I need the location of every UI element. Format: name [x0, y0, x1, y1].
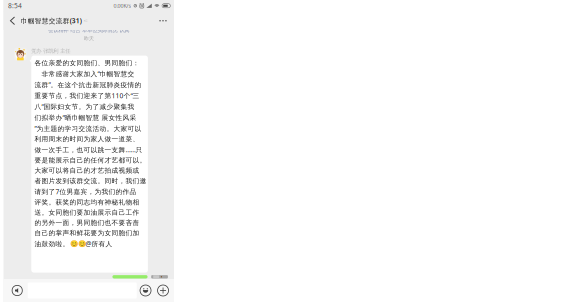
button[interactable]: Back — [3, 11, 21, 30]
staticText: 会议精神 结合 本单位实际情况 认真 — [48, 27, 129, 33]
staticText: 0.00K/s — [113, 2, 131, 9]
staticText: 8:54 — [8, 1, 22, 10]
staticText: 大家可以将自己的才艺拍成视频或 — [34, 166, 139, 175]
button[interactable]: Voice message — [7, 279, 28, 302]
staticText: 党办 张凯利 主任 — [31, 48, 70, 54]
staticText: 各位亲爱的女同胞们、男同胞们： — [34, 59, 139, 67]
button[interactable]: Emoji — [137, 279, 154, 302]
staticText: 八”国际妇女节。为了减少聚集我 — [34, 102, 134, 111]
staticText: 昨天 — [84, 35, 94, 42]
button[interactable]: More — [153, 11, 172, 30]
staticText: 油鼓劲啦。😊😊@所有人 — [34, 239, 112, 248]
staticText: 利用周末的时间为家人做一道菜、 — [34, 135, 139, 143]
staticText: 评奖。获奖的同志均有神秘礼物相 — [34, 198, 139, 206]
staticText: 巾帼智慧交流群(31) — [21, 16, 82, 25]
staticText: 非常感谢大家加入“巾帼智慧交 — [34, 69, 134, 78]
staticText: 流群”。在这个抗击新冠肺炎疫情的 — [34, 80, 141, 89]
staticText: 做一次手工，也可以跳一支舞……只 — [34, 145, 142, 154]
staticText: 们拟举办“晒巾帼智慧 展女性风采 — [34, 113, 136, 122]
staticText: 要是能展示自己的任何才艺都可以。 — [34, 156, 146, 164]
staticText: 重要节点，我们迎来了第110个“三 — [34, 91, 139, 100]
staticText: 的另外一面，男同胞们也不要吝啬 — [34, 219, 139, 227]
staticText: ”为主题的学习交流活动。大家可以 — [34, 124, 141, 133]
staticText: 者图片发到该群交流。同时，我们邀 — [34, 177, 146, 185]
staticText: 送。女同胞们要加油展示自己工作 — [34, 208, 139, 217]
staticText: 自己的掌声和鲜花要为女同胞们加 — [34, 229, 139, 237]
button[interactable]: More options — [154, 279, 172, 302]
staticText: 请到了7位男嘉宾，为我们的作品 — [34, 187, 136, 196]
